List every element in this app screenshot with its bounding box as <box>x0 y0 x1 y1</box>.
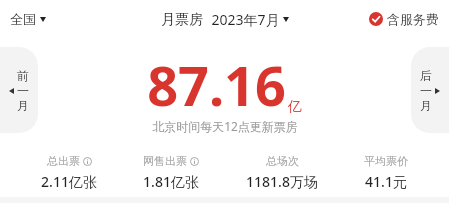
staticText: 平均票价 <box>364 154 408 168</box>
button[interactable]: 前一月 <box>0 47 38 133</box>
button[interactable]: 平均票价 <box>358 152 414 193</box>
staticText: 前 <box>17 68 29 83</box>
button[interactable]: 后一月 <box>411 47 449 133</box>
staticText: 2023年7月 <box>211 10 280 29</box>
staticText: 1181.8万场 <box>246 172 318 191</box>
staticText: 总场次 <box>266 154 299 168</box>
staticText: 月 <box>17 98 29 113</box>
staticText: 2.11亿张 <box>41 172 97 191</box>
staticText: 1.81亿张 <box>143 172 199 191</box>
staticText: 全国 <box>10 11 36 27</box>
button[interactable]: 总场次 <box>240 152 324 193</box>
staticText: 北京时间每天12点更新票房 <box>152 118 298 134</box>
button[interactable]: 网售出票 <box>137 152 205 193</box>
button[interactable]: 含服务费 <box>367 7 441 31</box>
staticText: 一 <box>17 83 29 98</box>
staticText: 总出票 <box>47 154 80 168</box>
button[interactable]: 月票房 <box>159 6 291 33</box>
staticText: 87.16 <box>147 48 286 122</box>
staticText: 后 <box>420 68 432 83</box>
staticText: 含服务费 <box>387 11 439 27</box>
button[interactable]: 总出票 <box>35 152 103 193</box>
staticText: 一 <box>420 83 432 98</box>
button[interactable]: 全国 <box>8 7 48 31</box>
staticText: 月 <box>420 98 432 113</box>
staticText: 网售出票 <box>143 154 187 168</box>
staticText: 亿 <box>288 98 302 116</box>
staticText: 月票房 <box>161 11 203 29</box>
staticText: 41.1元 <box>365 172 407 191</box>
